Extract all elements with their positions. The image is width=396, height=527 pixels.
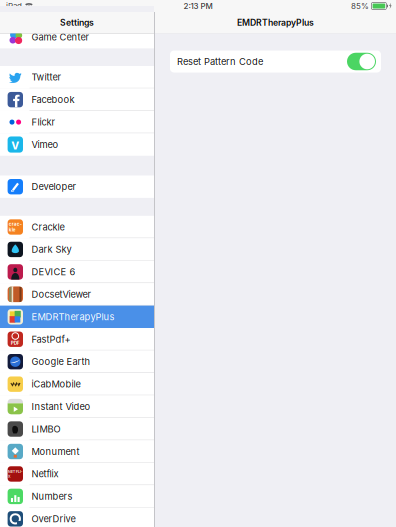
button[interactable]: Settings [0,12,154,33]
staticText: iCabMobile [32,378,81,390]
button[interactable]: crackle [0,216,154,238]
button[interactable]: DEVICE 6 [0,261,154,283]
staticText: LIMBO [32,423,61,435]
button[interactable]: Numbers [0,485,154,508]
staticText: Monument [32,446,80,457]
staticText: v [11,136,19,153]
staticText: 85% [351,1,369,11]
button[interactable]: Monument [0,440,154,463]
staticText: DEVICE 6 [32,266,76,278]
button[interactable]: Developer [0,175,154,198]
button[interactable]: Reset Pattern Code [170,50,381,72]
staticText: Twitter [32,72,62,83]
staticText: Netflix [32,468,59,480]
staticText: crackle [9,221,22,233]
staticText: Numbers [32,491,73,502]
staticText: OverDrive [32,513,76,524]
button[interactable]: Twitter [0,66,154,88]
staticText: 2:13 PM [183,1,212,11]
button[interactable]: Facebook [0,88,154,111]
staticText: FastPdf+ [32,334,71,345]
staticText: Facebook [32,94,75,105]
staticText: EMDRTherapyPlus [32,311,115,322]
staticText: Instant Video [32,401,91,412]
staticText: NETFLIX [8,469,23,479]
button[interactable]: LIMBO [0,418,154,440]
button[interactable]: iCabMobile [0,373,154,395]
button[interactable]: NETFLIX [0,463,154,485]
staticText: PDF [11,340,20,346]
button[interactable]: Dark Sky [0,238,154,261]
staticText: Google Earth [32,356,91,367]
button[interactable]: Instant Video [0,395,154,418]
button[interactable]: Google Earth [0,350,154,373]
button[interactable]: DocsetViewer [0,283,154,305]
staticText: Flickr [32,116,56,128]
button[interactable]: Game Center [0,26,154,48]
staticText: Dark Sky [32,244,72,255]
button[interactable]: PDF [0,328,154,350]
button[interactable]: OverDrive [0,508,154,527]
button[interactable]: v [0,133,154,156]
staticText: Developer [32,181,77,192]
staticText: EMDRTherapyPlus [237,17,314,28]
staticText: Vimeo [32,139,59,150]
button[interactable]: EMDRTherapyPlus [0,306,154,328]
staticText: Reset Pattern Code [177,56,263,67]
staticText: Game Center [32,32,90,43]
staticText: iPad [6,1,22,11]
staticText: DocsetViewer [32,289,92,300]
staticText: Crackle [32,221,65,233]
button[interactable]: Flickr [0,111,154,133]
staticText: Settings [60,17,94,28]
